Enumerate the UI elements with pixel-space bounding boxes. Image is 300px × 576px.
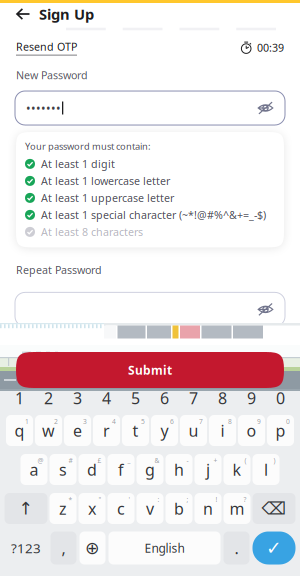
staticText: h [174,459,184,480]
button[interactable]: q [6,415,33,446]
button[interactable]: ⊕ [79,531,105,564]
button[interactable]: i [209,415,236,446]
staticText: New Password [16,68,88,82]
button[interactable]: , [50,531,76,564]
staticText: Repeat Password [16,263,102,277]
staticText: ; [186,495,188,504]
button[interactable]: x [78,493,105,524]
button[interactable]: 4 [93,391,120,405]
button[interactable]: u [180,415,207,446]
staticText: j [206,459,210,480]
staticText: £ [97,456,101,465]
staticText: w [42,420,55,441]
staticText: g [145,459,155,480]
staticText: Resend OTP [16,40,77,54]
button[interactable]: w [35,415,62,446]
button[interactable]: d [78,454,105,485]
button[interactable]: 7 [180,391,207,405]
staticText: e [73,420,82,441]
button[interactable]: f [107,454,134,485]
staticText: ) [273,456,275,465]
staticText: Sign Up [39,4,94,24]
staticText: At least 1 uppercase letter [41,191,174,205]
staticText: Submit [128,362,172,378]
staticText: 2 [54,417,58,426]
button[interactable]: Show password [257,100,274,116]
staticText: ↑ [18,499,33,518]
button[interactable]: y [151,415,178,446]
button[interactable]: 8 [209,391,236,405]
button[interactable]: h [165,454,192,485]
staticText: v [146,498,154,519]
button[interactable]: n [194,493,221,524]
button[interactable]: r [93,415,120,446]
staticText: f [118,459,124,480]
button[interactable]: Submit [16,352,284,388]
button[interactable]: t [122,415,149,446]
button[interactable]: 5 [122,391,149,405]
button[interactable]: b [165,493,192,524]
staticText: 3 [83,417,87,426]
staticText: k [232,459,241,480]
button[interactable]: 6 [151,391,178,405]
button[interactable]: 1 [6,391,33,405]
button[interactable]: k [223,454,250,485]
button[interactable]: Resend OTP [16,40,77,55]
staticText: ? [243,495,246,504]
staticText: 7 [199,417,203,426]
button[interactable]: z [49,493,76,524]
button[interactable]: c [107,493,134,524]
button[interactable]: 0 [267,391,294,405]
button[interactable]: v [136,493,163,524]
staticText: o [246,420,256,441]
button[interactable]: 2 [35,391,62,405]
staticText: 2 [44,387,53,409]
staticText: 9 [257,417,261,426]
staticText: 00:39 [257,40,284,55]
staticText: ✓ [266,537,282,559]
button[interactable]: ?123 [4,531,47,564]
staticText: r [103,420,110,441]
button[interactable]: p [267,415,294,446]
button[interactable]: English [108,531,220,564]
staticText: ⊕ [85,538,100,558]
button[interactable]: Enter [252,531,295,564]
staticText: * [68,495,72,504]
staticText: 1 [25,417,29,426]
button[interactable]: . [223,531,249,564]
button[interactable]: 3 [64,391,91,405]
button[interactable]: Show repeat password [257,301,274,317]
button[interactable]: Back [10,3,36,25]
staticText: 4 [112,417,116,426]
button[interactable]: o [238,415,265,446]
staticText: : [157,495,159,504]
button[interactable]: ⌫ [252,493,295,524]
staticText: ' [128,495,130,504]
staticText: " [98,495,101,504]
staticText: & [154,456,159,465]
staticText: ( [244,456,246,465]
staticText: q [14,420,24,441]
staticText: At least 1 lowercase letter [41,174,170,188]
staticText: . [234,537,238,559]
staticText: z [59,498,67,519]
button[interactable]: s [49,454,76,485]
staticText: At least 1 special character (~*!@#%^&+=… [41,208,266,222]
staticText: s [59,459,67,480]
button[interactable]: l [252,454,279,485]
button[interactable]: e [64,415,91,446]
button[interactable]: 9 [238,391,265,405]
button[interactable]: g [136,454,163,485]
staticText: p [275,420,285,441]
button[interactable]: m [223,493,250,524]
staticText: + [213,456,217,465]
staticText: l [264,459,268,480]
staticText: ••••••• [26,100,61,116]
staticText: 3 [73,387,82,409]
staticText: a [29,459,38,480]
staticText: , [61,537,65,559]
staticText: m [229,498,244,519]
button[interactable]: ↑ [4,493,47,524]
button[interactable]: j [194,454,221,485]
button[interactable]: a [20,454,47,485]
